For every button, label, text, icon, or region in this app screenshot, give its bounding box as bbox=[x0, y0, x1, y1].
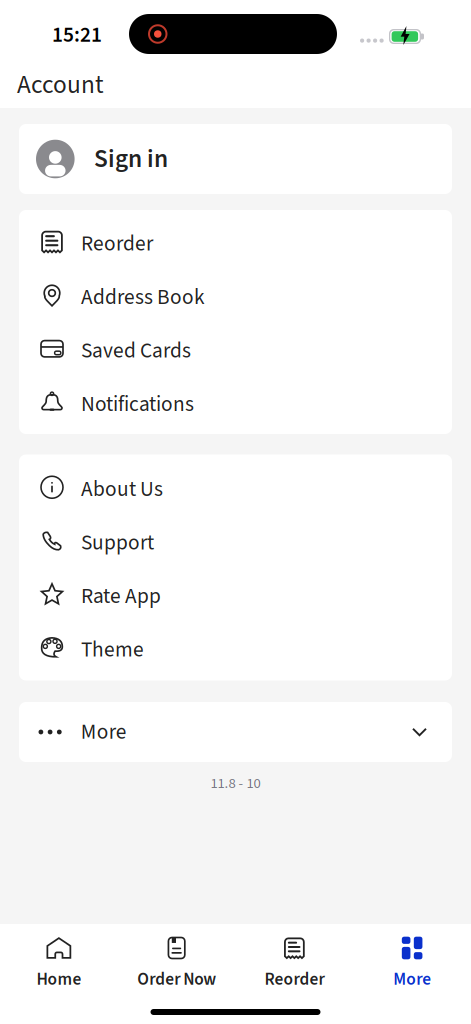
button[interactable]: About Us bbox=[19, 460, 452, 514]
button[interactable]: Sign in bbox=[19, 124, 452, 194]
button[interactable]: More bbox=[19, 702, 452, 762]
staticText: Notifications bbox=[81, 389, 194, 419]
button[interactable]: Reorder bbox=[19, 215, 452, 268]
button[interactable]: Rate App bbox=[19, 567, 452, 621]
staticText: More bbox=[393, 967, 431, 992]
staticText: Theme bbox=[81, 635, 144, 665]
button[interactable]: Home bbox=[0, 937, 118, 999]
staticText: Account bbox=[17, 67, 104, 103]
staticText: Home bbox=[36, 967, 81, 992]
staticText: About Us bbox=[81, 474, 163, 504]
staticText: Reorder bbox=[81, 229, 153, 259]
staticText: Rate App bbox=[81, 581, 161, 611]
staticText: Reorder bbox=[264, 967, 324, 992]
staticText: 11.8 - 10 bbox=[210, 773, 260, 794]
button[interactable]: Address Book bbox=[19, 268, 452, 322]
button[interactable]: More bbox=[353, 937, 471, 999]
staticText: Saved Cards bbox=[81, 336, 191, 366]
button[interactable]: Notifications bbox=[19, 375, 452, 429]
staticText: Sign in bbox=[94, 141, 168, 177]
button[interactable]: Saved Cards bbox=[19, 322, 452, 375]
staticText: Address Book bbox=[81, 282, 205, 312]
button[interactable]: Theme bbox=[19, 621, 452, 674]
button[interactable]: Reorder bbox=[235, 937, 353, 999]
staticText: Order Now bbox=[137, 967, 216, 992]
button[interactable]: Order Now bbox=[118, 937, 236, 999]
staticText: 15:21 bbox=[52, 20, 102, 50]
button[interactable]: Support bbox=[19, 514, 452, 567]
staticText: Support bbox=[81, 528, 154, 558]
staticText: More bbox=[81, 717, 127, 747]
